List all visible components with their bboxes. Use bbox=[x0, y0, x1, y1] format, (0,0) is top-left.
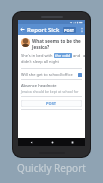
button[interactable]: the cold bbox=[55, 53, 71, 58]
button[interactable]: Home bbox=[45, 138, 59, 146]
staticText: Absence headnote bbox=[21, 83, 57, 88]
staticText: POST bbox=[46, 101, 57, 106]
staticText: the cold bbox=[55, 53, 71, 58]
other: Toggle bbox=[78, 73, 82, 77]
staticText: Jessica should be kept at school for two… bbox=[21, 89, 82, 94]
staticText: Jessica? bbox=[32, 44, 50, 50]
button[interactable]: Recents bbox=[65, 138, 79, 146]
staticText: What seems to be the problem with bbox=[32, 38, 82, 44]
button[interactable]: Back bbox=[18, 24, 27, 35]
button[interactable]: Back bbox=[24, 138, 38, 146]
staticText: POST bbox=[64, 28, 75, 33]
button[interactable]: POST bbox=[21, 100, 82, 107]
staticText: didn't sleep all night bbox=[21, 59, 59, 64]
staticText: Will she get to school/office all tomorr… bbox=[21, 72, 78, 77]
button[interactable]: Will she get to school/office all tomorr… bbox=[21, 72, 82, 77]
button[interactable]: Profile photo bbox=[21, 38, 30, 47]
button[interactable]: More options bbox=[78, 24, 85, 35]
staticText: Quickly Report Absence bbox=[0, 161, 103, 175]
button[interactable]: POST bbox=[63, 27, 76, 33]
staticText: She's in bed with bbox=[21, 53, 54, 58]
staticText: and bbox=[72, 53, 82, 58]
staticText: Report Sick bbox=[27, 26, 63, 34]
